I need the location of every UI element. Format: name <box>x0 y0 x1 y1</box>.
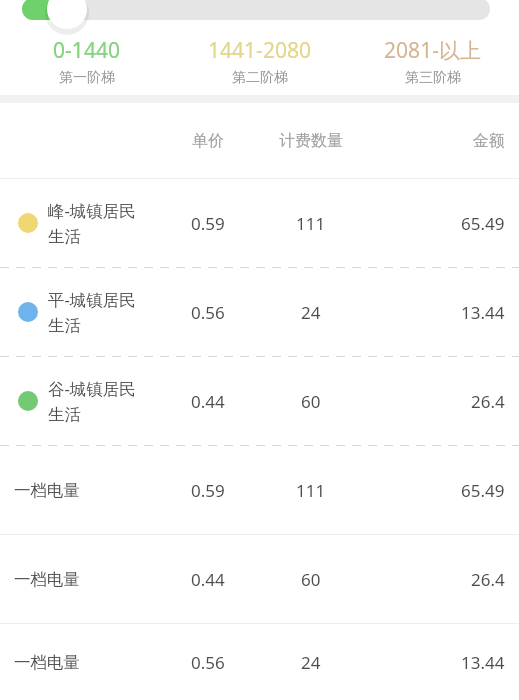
button[interactable]: 一档电量 <box>0 446 519 534</box>
staticText: 1441-2080 <box>208 36 311 65</box>
staticText: 第一阶梯 <box>59 69 115 87</box>
staticText: 0.59 <box>191 479 225 502</box>
staticText: 65.49 <box>461 479 505 502</box>
button[interactable]: 谷-城镇居民 生活 <box>0 357 519 445</box>
button[interactable]: 2081-以上 <box>346 36 519 87</box>
staticText: 0.56 <box>191 301 225 324</box>
staticText: 60 <box>301 390 321 413</box>
staticText: 一档电量 <box>14 480 80 501</box>
button[interactable]: 一档电量 <box>0 535 519 623</box>
staticText: 谷-城镇居民 生活 <box>48 377 136 425</box>
staticText: 0.44 <box>191 390 225 413</box>
staticText: 0.56 <box>191 651 225 674</box>
button[interactable]: 1441-2080 <box>173 36 346 87</box>
staticText: 0.44 <box>191 568 225 591</box>
staticText: 一档电量 <box>14 569 80 590</box>
button[interactable]: 一档电量 <box>0 624 519 700</box>
staticText: 26.4 <box>471 390 505 413</box>
button[interactable]: 0-1440 <box>0 36 173 87</box>
staticText: 13.44 <box>461 301 505 324</box>
staticText: 24 <box>301 651 321 674</box>
staticText: 峰-城镇居民 生活 <box>48 199 136 247</box>
button[interactable]: Electricity usage slider <box>0 0 519 32</box>
staticText: 金额 <box>473 131 505 151</box>
staticText: 0.59 <box>191 212 225 235</box>
staticText: 26.4 <box>471 568 505 591</box>
staticText: 111 <box>296 212 326 235</box>
staticText: 60 <box>301 568 321 591</box>
staticText: 13.44 <box>461 651 505 674</box>
staticText: 计费数量 <box>279 131 343 151</box>
button[interactable]: 平-城镇居民 生活 <box>0 268 519 356</box>
staticText: 平-城镇居民 生活 <box>48 288 136 336</box>
staticText: 第二阶梯 <box>232 69 288 87</box>
staticText: 单价 <box>192 131 224 151</box>
button[interactable]: 峰-城镇居民 生活 <box>0 179 519 267</box>
staticText: 65.49 <box>461 212 505 235</box>
staticText: 0-1440 <box>53 36 120 65</box>
staticText: 24 <box>301 301 321 324</box>
staticText: 2081-以上 <box>384 36 481 65</box>
staticText: 111 <box>296 479 326 502</box>
staticText: 一档电量 <box>14 652 80 673</box>
staticText: 第三阶梯 <box>405 69 461 87</box>
